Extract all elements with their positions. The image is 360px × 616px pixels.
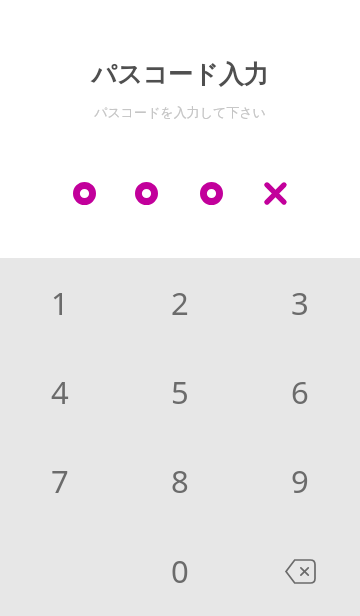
button[interactable]: 6 <box>240 347 360 436</box>
staticText: 4 <box>51 371 69 413</box>
staticText: 8 <box>171 460 189 502</box>
button[interactable]: 8 <box>120 436 240 526</box>
button[interactable]: 0 <box>120 526 240 616</box>
button[interactable]: 3 <box>240 258 360 347</box>
staticText: パスコード入力 <box>91 59 269 90</box>
staticText: 7 <box>51 460 69 502</box>
staticText: 5 <box>171 371 189 413</box>
button[interactable]: 4 <box>0 347 120 436</box>
staticText: 3 <box>291 282 309 324</box>
staticText: パスコードを入力して下さい <box>94 104 266 120</box>
staticText: 2 <box>171 282 189 324</box>
staticText: 1 <box>51 282 69 324</box>
button[interactable]: 2 <box>120 258 240 347</box>
staticText: 0 <box>171 550 189 592</box>
button[interactable]: 1 <box>0 258 120 347</box>
button[interactable]: 5 <box>120 347 240 436</box>
button[interactable]: Backspace <box>240 526 360 616</box>
button[interactable]: 9 <box>240 436 360 526</box>
staticText: 6 <box>291 371 309 413</box>
button[interactable]: 7 <box>0 436 120 526</box>
staticText: 9 <box>291 460 309 502</box>
